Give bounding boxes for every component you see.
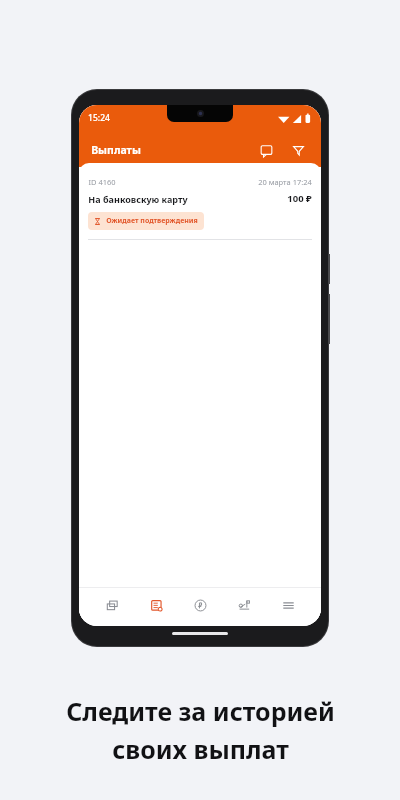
button[interactable]: Payouts: [137, 588, 175, 622]
staticText: своих выплат: [112, 732, 289, 766]
staticText: 15:24: [88, 112, 110, 124]
staticText: ID 4160: [88, 177, 116, 187]
staticText: Выплаты: [91, 143, 141, 157]
button[interactable]: ID 4160: [79, 177, 321, 240]
button[interactable]: Chat: [253, 137, 279, 163]
staticText: 20 марта 17:24: [258, 177, 312, 187]
button[interactable]: Finance: [181, 588, 219, 622]
button[interactable]: Orders: [93, 588, 131, 622]
button[interactable]: Filter: [285, 137, 311, 163]
staticText: 100 ₽: [287, 192, 312, 205]
staticText: Следите за историей: [66, 694, 335, 728]
button[interactable]: Menu: [269, 588, 307, 622]
staticText: На банковскую карту: [88, 193, 188, 205]
button[interactable]: Analytics: [225, 588, 263, 622]
staticText: Ожидает подтверждения: [106, 216, 198, 226]
